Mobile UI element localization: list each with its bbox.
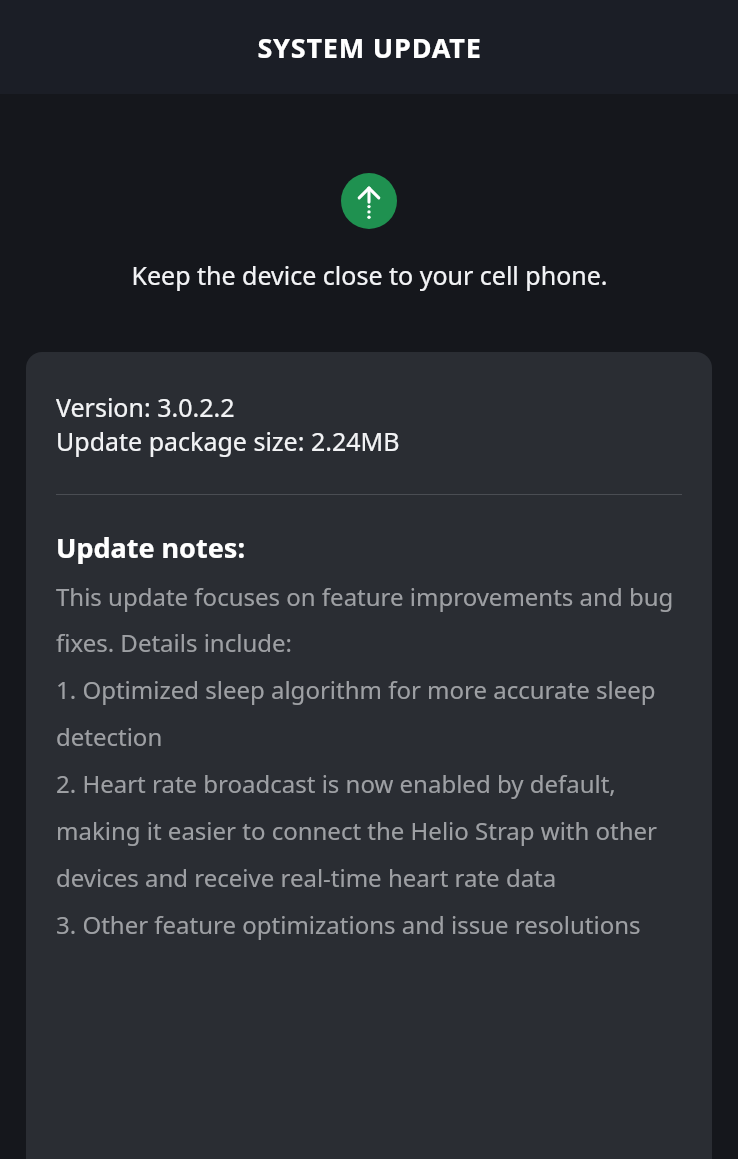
- staticText: Keep the device close to your cell phone…: [131, 258, 608, 292]
- staticText: This update focuses on feature improveme…: [56, 580, 682, 942]
- button[interactable]: Version: 3.0.2.2: [26, 352, 712, 1159]
- button[interactable]: Update available: [341, 173, 397, 229]
- staticText: SYSTEM UPDATE: [257, 29, 482, 66]
- staticText: Update notes:: [56, 529, 245, 566]
- staticText: Update package size: 2.24MB: [56, 424, 400, 458]
- staticText: Version: 3.0.2.2: [56, 390, 235, 424]
